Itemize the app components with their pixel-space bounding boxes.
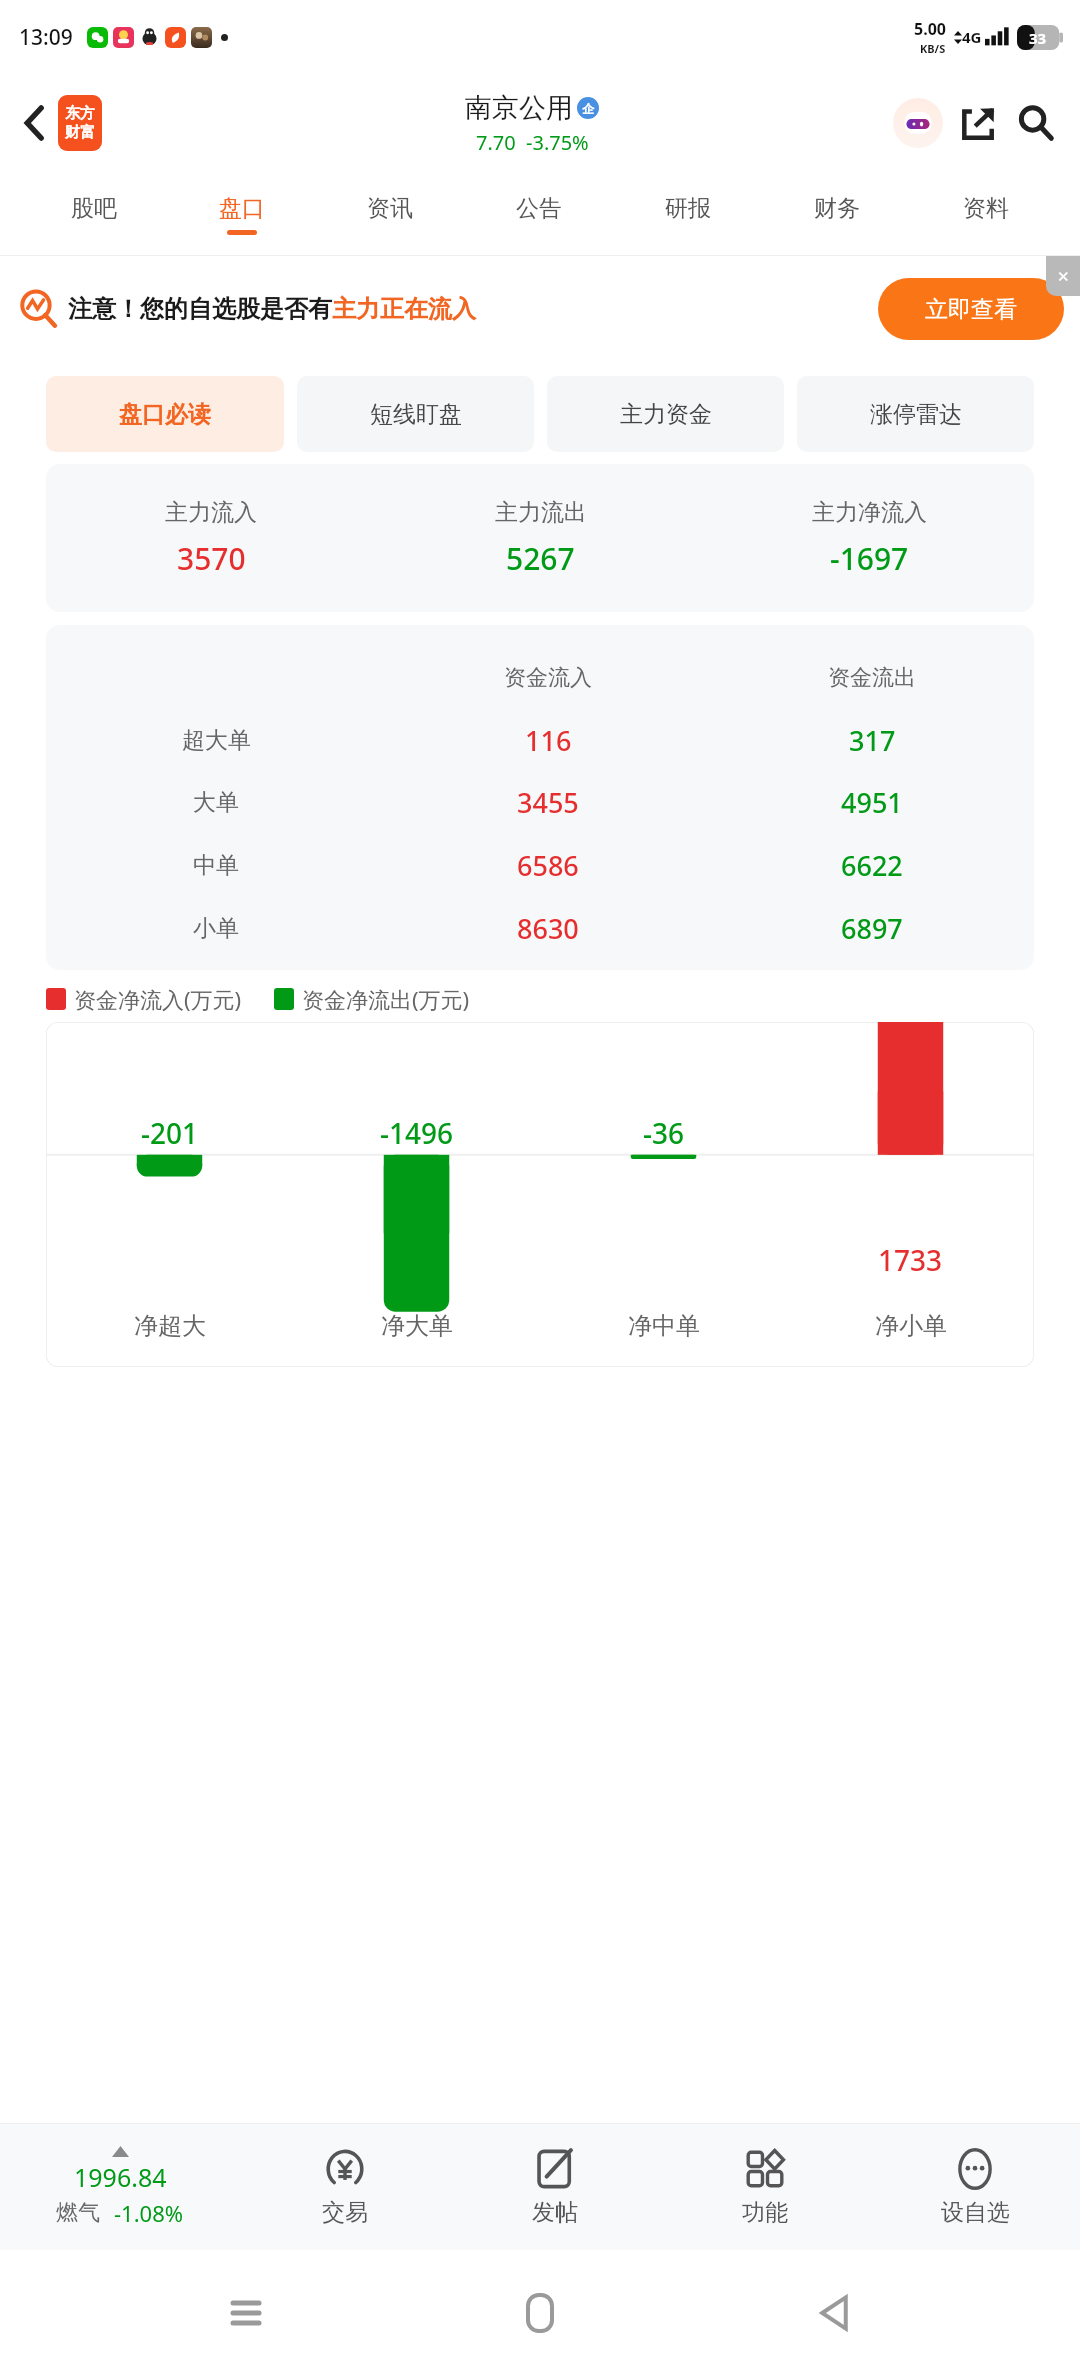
- button[interactable]: Home: [492, 2265, 588, 2361]
- button[interactable]: 财务: [762, 172, 911, 256]
- button[interactable]: AI assistant: [890, 95, 946, 151]
- staticText: 注意！您的自选股是否有: [68, 294, 332, 324]
- staticText: 净大单: [381, 1311, 453, 1341]
- staticText: -1.08%: [114, 2198, 184, 2228]
- staticText: 资讯: [367, 194, 413, 223]
- staticText: 财富: [65, 123, 95, 142]
- staticText: 3570: [177, 538, 246, 579]
- staticText: 短线盯盘: [370, 400, 462, 429]
- staticText: 主力正在流入: [332, 294, 476, 324]
- button[interactable]: 1996.84: [0, 2124, 240, 2250]
- button[interactable]: 盘口必读: [46, 376, 284, 452]
- staticText: 财务: [814, 194, 860, 223]
- staticText: 资金流出: [828, 664, 916, 692]
- staticText: 资金净流入(万元): [74, 984, 242, 1014]
- staticText: 发帖: [532, 2198, 578, 2227]
- staticText: 6622: [841, 847, 903, 884]
- button[interactable]: 公告: [464, 172, 613, 256]
- staticText: 116: [525, 722, 572, 759]
- staticText: 主力净流入: [812, 498, 927, 527]
- button[interactable]: Share: [950, 95, 1006, 151]
- staticText: 功能: [742, 2198, 788, 2227]
- button[interactable]: 交易: [240, 2124, 450, 2250]
- staticText: 33: [1029, 28, 1047, 48]
- staticText: KB/S: [920, 41, 946, 56]
- button[interactable]: 主力流入: [46, 464, 1034, 612]
- staticText: 13:09: [19, 23, 73, 52]
- staticText: 涨停雷达: [870, 400, 962, 429]
- staticText: -36: [643, 1114, 685, 1152]
- staticText: 股吧: [71, 194, 117, 223]
- staticText: 317: [849, 722, 896, 759]
- button[interactable]: 资金流入: [46, 625, 1034, 970]
- button[interactable]: 研报: [613, 172, 762, 256]
- button[interactable]: Search: [1008, 95, 1064, 151]
- staticText: 设自选: [941, 2198, 1010, 2227]
- button[interactable]: Back: [786, 2265, 882, 2361]
- staticText: 6897: [841, 910, 903, 947]
- button[interactable]: 涨停雷达: [797, 376, 1034, 452]
- staticText: 盘口必读: [119, 400, 211, 429]
- staticText: 7.70: [476, 129, 516, 156]
- staticText: 小单: [193, 914, 239, 943]
- staticText: 1996.84: [74, 2160, 167, 2194]
- staticText: 8630: [517, 910, 579, 947]
- staticText: 资金流入: [504, 664, 592, 692]
- button[interactable]: 发帖: [450, 2124, 660, 2250]
- staticText: 主力流入: [165, 498, 257, 527]
- staticText: 企: [582, 101, 594, 116]
- staticText: 中单: [193, 851, 239, 880]
- button[interactable]: 立即查看: [878, 278, 1064, 340]
- staticText: -201: [141, 1114, 199, 1152]
- staticText: 4G: [962, 27, 982, 47]
- staticText: 3455: [517, 784, 579, 821]
- button[interactable]: 设自选: [870, 2124, 1080, 2250]
- staticText: 燃气: [56, 2199, 100, 2227]
- staticText: 5267: [506, 538, 575, 579]
- staticText: 交易: [322, 2198, 368, 2227]
- staticText: 立即查看: [925, 295, 1017, 324]
- staticText: 资料: [963, 194, 1009, 223]
- staticText: 资金净流出(万元): [302, 984, 470, 1014]
- staticText: 4951: [841, 784, 903, 821]
- button[interactable]: 主力资金: [547, 376, 784, 452]
- staticText: -1496: [380, 1114, 454, 1152]
- staticText: 研报: [665, 194, 711, 223]
- button[interactable]: 功能: [660, 2124, 870, 2250]
- button[interactable]: 股吧: [20, 172, 168, 256]
- staticText: 大单: [193, 788, 239, 817]
- button[interactable]: Back: [8, 97, 60, 149]
- staticText: 6586: [517, 847, 579, 884]
- button[interactable]: -201: [46, 1022, 1034, 1367]
- staticText: 5.00: [914, 18, 946, 40]
- staticText: -1697: [830, 538, 909, 579]
- staticText: 净中单: [628, 1311, 700, 1341]
- staticText: -3.75%: [526, 129, 589, 156]
- button[interactable]: Close ad: [1046, 256, 1080, 296]
- button[interactable]: 资讯: [316, 172, 464, 256]
- button[interactable]: 资料: [911, 172, 1060, 256]
- staticText: 超大单: [182, 726, 251, 755]
- button[interactable]: 东方财富: [58, 95, 102, 151]
- staticText: 东方: [65, 104, 95, 123]
- staticText: 盘口: [219, 194, 265, 223]
- staticText: 南京公用: [465, 91, 573, 125]
- staticText: 主力资金: [620, 400, 712, 429]
- staticText: ✕: [1057, 268, 1070, 285]
- button[interactable]: Recents: [198, 2265, 294, 2361]
- staticText: 主力流出: [495, 498, 587, 527]
- button[interactable]: 短线盯盘: [297, 376, 534, 452]
- staticText: 公告: [516, 194, 562, 223]
- staticText: 1733: [878, 1241, 943, 1279]
- button[interactable]: 盘口: [168, 172, 316, 256]
- staticText: 净小单: [875, 1311, 947, 1341]
- staticText: 净超大: [134, 1311, 206, 1341]
